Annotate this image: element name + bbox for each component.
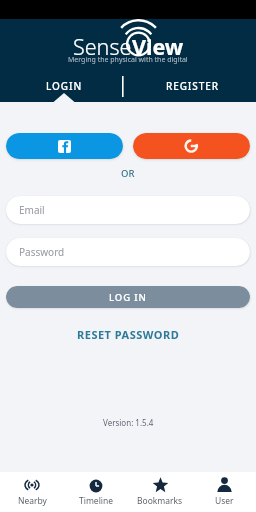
button[interactable]: LOGIN <box>0 73 128 99</box>
staticText: RESET PASSWORD <box>77 327 180 342</box>
staticText: Email <box>19 203 45 217</box>
staticText: View <box>132 32 184 61</box>
staticText: OR <box>121 167 135 180</box>
staticText: Merging the physical with the digital <box>68 55 188 65</box>
button[interactable]: Timeline <box>64 472 128 512</box>
button[interactable]: RESET PASSWORD <box>71 324 186 345</box>
staticText: LOG IN <box>109 291 147 304</box>
staticText: Version: 1.5.4 <box>103 417 154 428</box>
button[interactable]: Email <box>6 196 250 224</box>
staticText: LOGIN <box>46 79 83 93</box>
staticText: REGISTER <box>166 79 219 93</box>
button[interactable]: Password <box>6 238 250 266</box>
button[interactable]: Nearby <box>0 472 64 512</box>
button[interactable]: Bookmarks <box>128 472 192 512</box>
button[interactable]: User <box>192 472 256 512</box>
button[interactable]: Sign in with Google <box>133 133 250 159</box>
staticText: Timeline <box>79 495 114 507</box>
staticText: Password <box>19 245 65 259</box>
button[interactable]: LOG IN <box>6 286 250 308</box>
staticText: Bookmarks <box>137 495 183 507</box>
staticText: User <box>215 495 234 507</box>
button[interactable]: Sign in with Facebook <box>6 133 123 159</box>
staticText: Sense <box>73 32 132 61</box>
button[interactable]: REGISTER <box>128 73 256 99</box>
staticText: Nearby <box>18 495 47 507</box>
